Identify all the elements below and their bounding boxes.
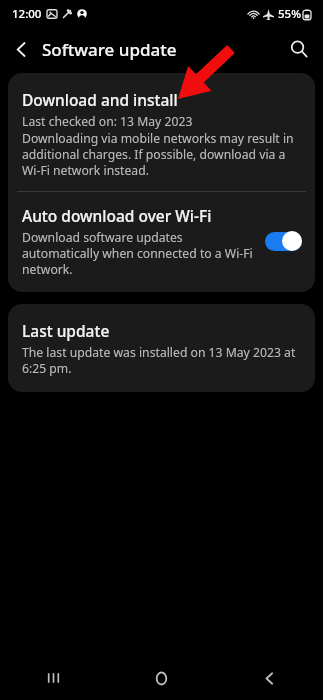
staticText: 55% <box>278 6 301 22</box>
button[interactable]: Home <box>107 656 215 700</box>
button[interactable]: Back <box>215 656 323 700</box>
staticText: Auto download over Wi-Fi <box>22 205 212 226</box>
staticText: The last update was installed on 13 May … <box>22 344 301 376</box>
staticText: Download and install <box>22 89 178 110</box>
staticText: 12:00 <box>12 6 42 22</box>
button[interactable]: Back <box>0 28 42 70</box>
button[interactable]: Auto download over Wi-Fi <box>8 192 315 292</box>
button[interactable]: Recents <box>0 656 107 700</box>
staticText: Last checked on: 13 May 2023 <box>22 113 193 130</box>
button[interactable]: Last update <box>8 304 315 392</box>
staticText: Downloading via mobile networks may resu… <box>22 130 301 178</box>
button[interactable]: Auto download over Wi-Fi toggle <box>263 228 303 254</box>
button[interactable]: Search <box>277 28 321 70</box>
staticText: Download software updates automatically … <box>22 229 255 277</box>
staticText: Last update <box>22 320 110 341</box>
staticText: Software update <box>42 38 177 61</box>
button[interactable]: Download and install <box>8 73 315 191</box>
